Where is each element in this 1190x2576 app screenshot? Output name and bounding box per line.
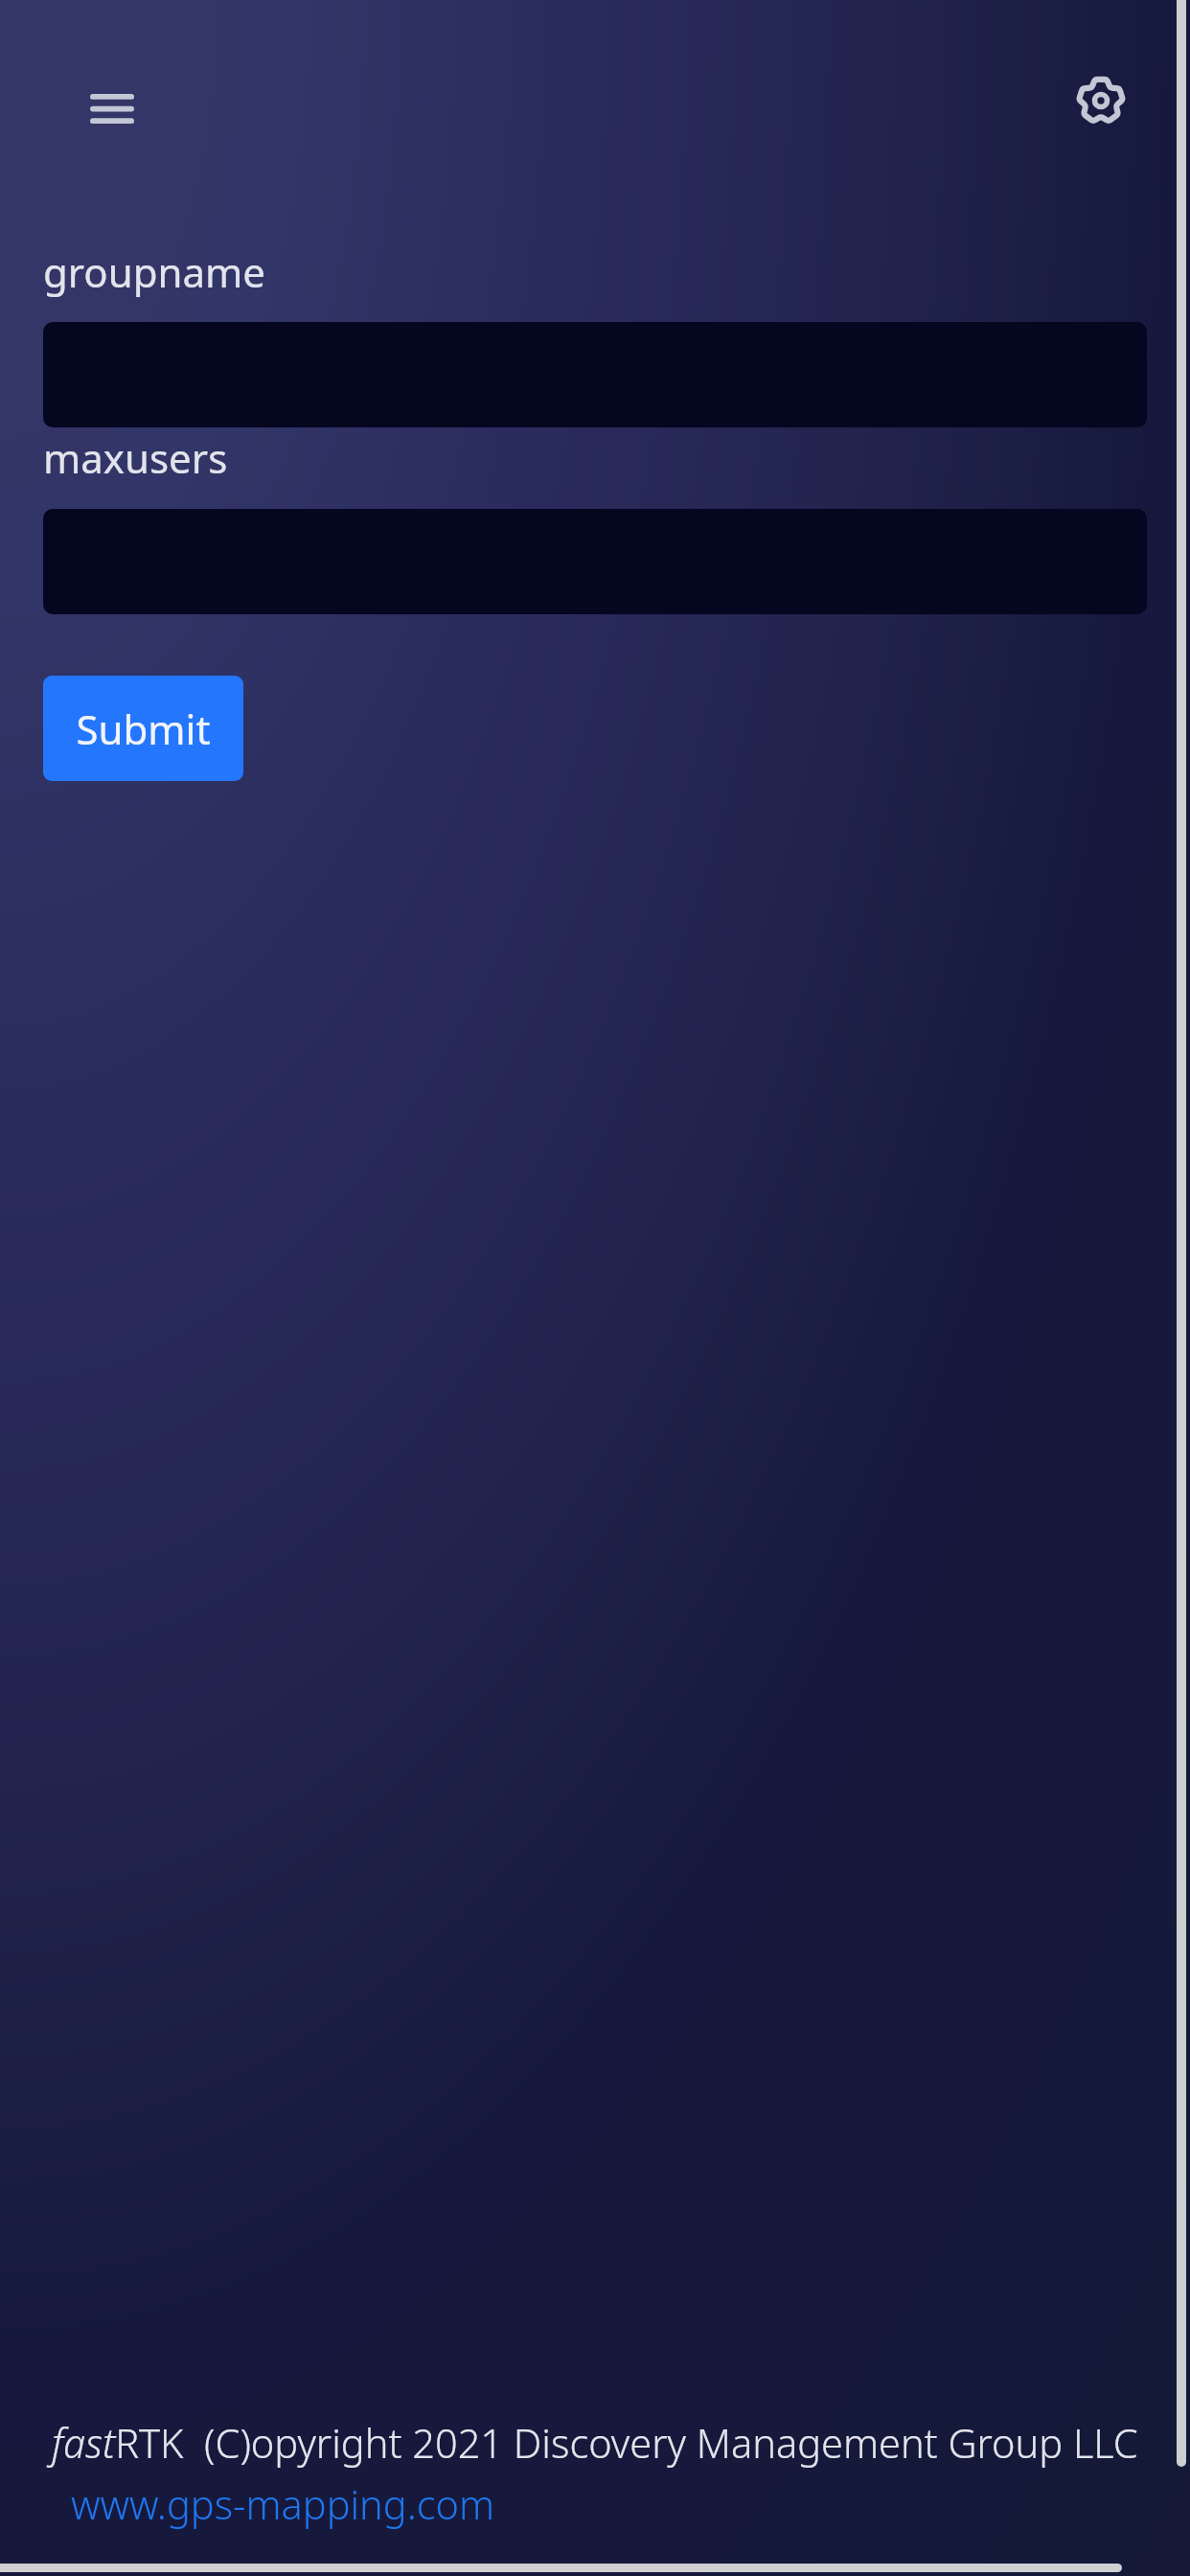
button[interactable]: Menu — [67, 71, 157, 148]
button[interactable]: Settings — [1062, 61, 1136, 138]
button[interactable]: www.gps-mapping.com — [71, 2477, 495, 2532]
staticText: fastRTK (C)opyright 2021 Discovery Manag… — [52, 2416, 1138, 2471]
staticText: Submit — [76, 701, 211, 756]
staticText: groupname — [43, 244, 266, 299]
button[interactable]: Submit — [43, 676, 243, 781]
staticText: maxusers — [43, 430, 228, 485]
